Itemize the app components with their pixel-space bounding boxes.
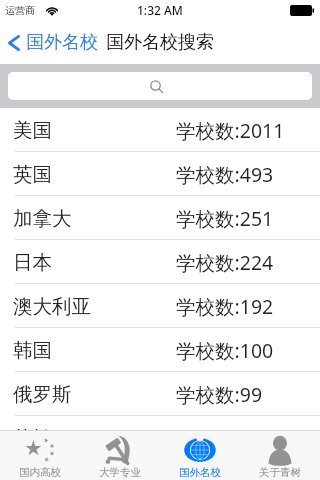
staticText: 学校数:251 — [176, 205, 274, 232]
button[interactable] — [8, 72, 312, 100]
staticText: 学校数:224 — [176, 249, 274, 276]
staticText: 学校数:493 — [176, 161, 274, 188]
staticText: 国外名校 — [26, 31, 98, 54]
staticText: 大学专业 — [99, 466, 141, 479]
staticText: 俄罗斯 — [13, 382, 72, 407]
staticText: 关于青树 — [259, 466, 301, 479]
staticText: 学校数:2011 — [176, 117, 285, 144]
button[interactable]: 芬兰 — [0, 416, 320, 460]
staticText: 国外名校搜索 — [106, 31, 214, 54]
button[interactable]: 澳大利亚 — [0, 284, 320, 328]
staticText: 运营商 — [5, 4, 35, 17]
staticText: 韩国 — [13, 338, 52, 363]
staticText: 芬兰 — [13, 426, 52, 451]
staticText: 学校数:88 — [176, 425, 263, 452]
staticText: 1:32 AM — [137, 2, 183, 18]
button[interactable]: 日本 — [0, 240, 320, 284]
button[interactable]: 国内高校 — [0, 431, 80, 480]
button[interactable]: 大学专业 — [80, 431, 160, 480]
staticText: 美国 — [13, 118, 52, 143]
staticText: 学校数:100 — [176, 337, 274, 364]
staticText: 日本 — [13, 250, 52, 275]
button[interactable]: 加拿大 — [0, 196, 320, 240]
button[interactable]: 关于青树 — [240, 431, 320, 480]
button[interactable]: 韩国 — [0, 328, 320, 372]
staticText: 学校数:99 — [176, 381, 263, 408]
button[interactable]: 美国 — [0, 108, 320, 152]
staticText: 学校数:192 — [176, 293, 274, 320]
staticText: 英国 — [13, 162, 52, 187]
staticText: 加拿大 — [13, 206, 72, 231]
staticText: 国内高校 — [19, 466, 61, 479]
staticText: 澳大利亚 — [13, 294, 91, 319]
button[interactable]: 国外名校 — [0, 31, 104, 54]
button[interactable]: 俄罗斯 — [0, 372, 320, 416]
staticText: 国外名校 — [179, 466, 221, 479]
button[interactable]: 国外名校 — [160, 431, 240, 480]
button[interactable]: 英国 — [0, 152, 320, 196]
